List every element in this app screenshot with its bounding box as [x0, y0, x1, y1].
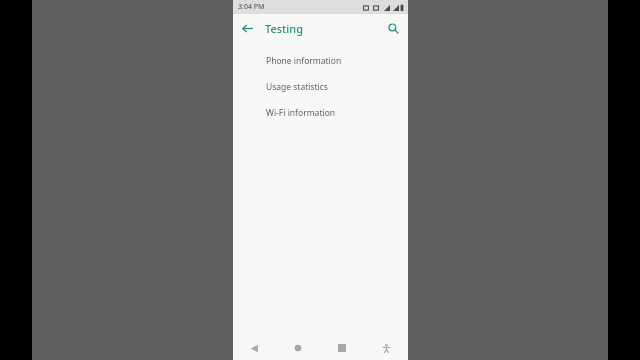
staticText: 3:04 PM [238, 2, 265, 12]
button[interactable]: Accessibility [364, 336, 408, 360]
button[interactable]: Back [233, 336, 276, 360]
staticText: Phone information [266, 55, 342, 67]
staticText: Testing [265, 21, 303, 36]
button[interactable]: Home [276, 336, 320, 360]
button[interactable]: Phone information [233, 48, 408, 74]
staticText: Wi-Fi information [266, 107, 336, 119]
button[interactable]: Wi-Fi information [233, 100, 408, 126]
button[interactable]: Usage statistics [233, 74, 408, 100]
button[interactable]: Back [236, 17, 258, 39]
button[interactable]: Recent apps [320, 336, 364, 360]
button[interactable]: Search [382, 17, 404, 39]
staticText: Usage statistics [266, 81, 328, 93]
